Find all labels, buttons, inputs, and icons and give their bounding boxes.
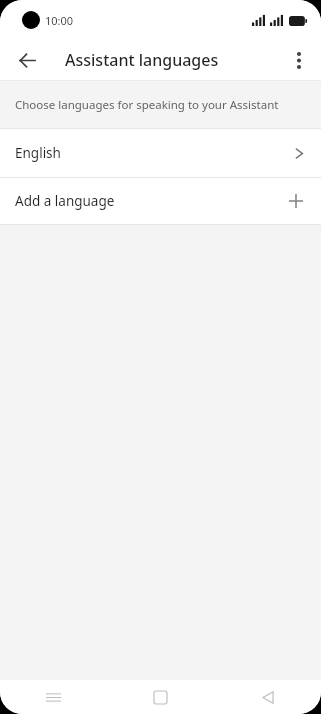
other: Add a language [288, 193, 304, 209]
button[interactable]: More options [283, 44, 315, 76]
staticText: Add a language [15, 192, 115, 210]
button[interactable]: Back [214, 680, 321, 714]
button[interactable]: English [0, 129, 321, 177]
button[interactable]: Back [11, 44, 43, 76]
staticText: Choose languages for speaking to your As… [15, 97, 279, 113]
other: Open English language settings [295, 146, 304, 161]
staticText: 10:00 [45, 13, 74, 28]
button[interactable]: Recent apps [0, 680, 107, 714]
staticText: English [15, 144, 61, 162]
button[interactable]: Add a language [0, 178, 321, 224]
staticText: Assistant languages [65, 49, 219, 71]
button[interactable]: Home [107, 680, 214, 714]
